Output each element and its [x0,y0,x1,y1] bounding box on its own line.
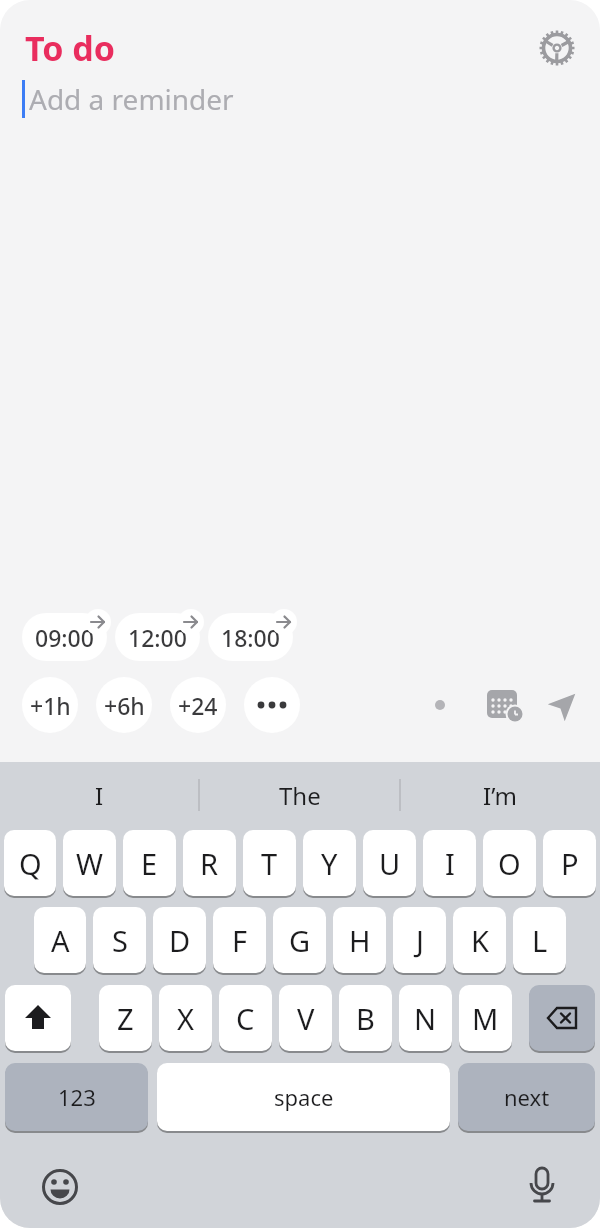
button[interactable]: V [279,985,332,1051]
button[interactable]: D [153,907,206,973]
staticText: P [561,844,579,883]
button[interactable]: +1h [22,677,78,733]
staticText: space [274,1082,334,1112]
button[interactable]: I [0,762,198,828]
button[interactable]: The [200,762,399,828]
button[interactable] [529,985,595,1051]
button[interactable]: F [213,907,266,973]
staticText: O [498,844,521,883]
button[interactable] [520,1163,564,1207]
button[interactable] [538,29,576,67]
button[interactable]: space [157,1063,450,1131]
button[interactable]: M [459,985,512,1051]
staticText: I’m [483,779,518,812]
staticText: E [141,844,158,883]
staticText: +6h [104,690,145,721]
staticText: Y [321,844,338,883]
staticText: +1h [30,690,71,721]
staticText: To do [25,25,116,71]
button[interactable]: 12:00 [115,613,200,661]
button[interactable]: +6h [96,677,152,733]
button[interactable]: next [458,1063,595,1131]
staticText: K [471,921,489,960]
staticText: D [169,921,191,960]
button[interactable]: H [333,907,386,973]
staticText: L [532,921,548,960]
staticText: G [289,921,311,960]
staticText: 18:00 [221,622,280,653]
button[interactable]: +24 [170,677,226,733]
button[interactable]: L [513,907,566,973]
button[interactable]: U [363,830,416,896]
staticText: W [76,844,103,883]
staticText: The [279,779,321,812]
button[interactable]: A [34,907,86,973]
staticText: I [95,779,104,812]
button[interactable] [244,677,300,733]
button[interactable]: Y [303,830,356,896]
button[interactable]: E [123,830,176,896]
button[interactable] [484,685,524,725]
staticText: R [200,844,219,883]
button[interactable]: 09:00 [22,613,107,661]
staticText: I [445,844,455,883]
staticText: Add a reminder [29,80,234,118]
button[interactable]: S [93,907,146,973]
staticText: A [51,921,70,960]
staticText: 123 [58,1082,96,1112]
button[interactable]: W [63,830,116,896]
button[interactable]: C [219,985,272,1051]
staticText: M [472,999,499,1038]
button[interactable]: X [159,985,212,1051]
button[interactable]: P [543,830,596,896]
button[interactable]: Q [4,830,56,896]
staticText: next [504,1082,550,1112]
button[interactable]: 123 [5,1063,148,1131]
button[interactable]: O [483,830,536,896]
button[interactable]: I’m [401,762,600,828]
button[interactable]: I [423,830,476,896]
staticText: V [297,999,315,1038]
button[interactable]: K [453,907,506,973]
staticText: F [232,921,248,960]
staticText: 12:00 [128,622,187,653]
staticText: Z [117,999,134,1038]
staticText: Q [19,844,42,883]
button[interactable]: N [399,985,452,1051]
button[interactable]: 18:00 [208,613,293,661]
button[interactable] [5,985,71,1051]
button[interactable]: Z [99,985,152,1051]
staticText: +24 [178,690,218,721]
button[interactable]: Add a reminder [22,80,600,118]
button[interactable]: T [243,830,296,896]
staticText: U [379,844,401,883]
staticText: C [236,999,255,1038]
button[interactable]: B [339,985,392,1051]
staticText: J [416,921,424,960]
staticText: X [177,999,194,1038]
staticText: B [356,999,375,1038]
staticText: T [261,844,278,883]
button[interactable] [40,1167,80,1207]
staticText: H [349,921,371,960]
staticText: N [414,999,437,1038]
button[interactable]: G [273,907,326,973]
button[interactable]: R [183,830,236,896]
button[interactable] [544,685,584,725]
button[interactable]: J [393,907,446,973]
staticText: S [112,921,128,960]
staticText: 09:00 [35,622,94,653]
